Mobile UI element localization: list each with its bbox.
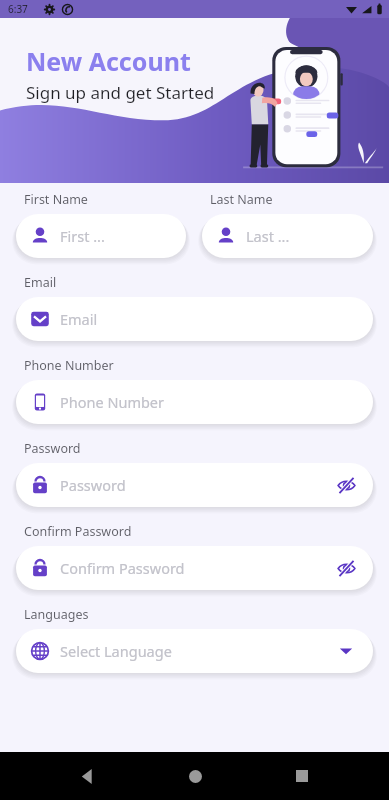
staticText: Select Language xyxy=(60,641,333,661)
staticText: Languages xyxy=(24,606,89,623)
staticText: Last Name xyxy=(210,191,273,208)
staticText: Phone Number xyxy=(24,357,114,374)
staticText: Confirm Password xyxy=(24,523,132,540)
staticText: Sign up and get Started xyxy=(26,81,215,104)
button[interactable]: Recent apps xyxy=(282,756,322,796)
button[interactable]: Open language list xyxy=(333,638,359,664)
staticText: Confirm Password xyxy=(60,558,333,578)
button[interactable]: Confirm Password xyxy=(16,546,373,590)
staticText: Password xyxy=(24,440,81,457)
button[interactable]: Toggle password visibility xyxy=(333,472,359,498)
button[interactable]: Home xyxy=(175,756,215,796)
staticText: Email xyxy=(24,274,57,291)
staticText: Last ... xyxy=(246,226,359,246)
button[interactable]: First ... xyxy=(16,214,186,258)
staticText: First ... xyxy=(60,226,172,246)
button[interactable]: Password xyxy=(16,463,373,507)
button[interactable]: Phone Number xyxy=(16,380,373,424)
button[interactable]: Last ... xyxy=(202,214,373,258)
staticText: First Name xyxy=(24,191,88,208)
staticText: Password xyxy=(60,475,333,495)
staticText: New Account xyxy=(26,44,191,78)
staticText: Phone Number xyxy=(60,392,359,412)
staticText: Email xyxy=(60,309,359,329)
button[interactable]: Toggle password visibility xyxy=(333,555,359,581)
button[interactable]: Back xyxy=(67,756,107,796)
button[interactable]: Select Language xyxy=(16,629,373,673)
button[interactable]: Email xyxy=(16,297,373,341)
staticText: 6:37 xyxy=(8,2,28,16)
